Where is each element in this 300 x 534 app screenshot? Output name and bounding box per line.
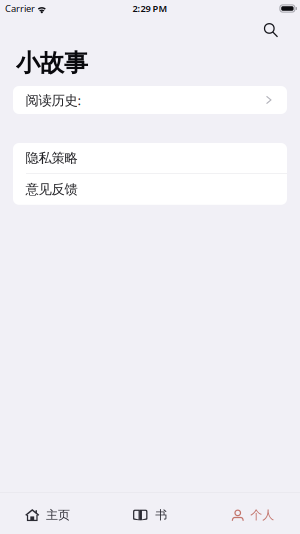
button[interactable]: 意见反馈 — [13, 174, 287, 205]
staticText: 2:29 PM — [132, 2, 167, 15]
staticText: 主页 — [46, 508, 70, 522]
button[interactable]: 主页 — [0, 493, 100, 534]
button[interactable]: 阅读历史: — [13, 86, 287, 114]
staticText: 隐私策略 — [25, 150, 77, 166]
button[interactable]: 书 — [100, 493, 200, 534]
staticText: 阅读历史: — [25, 91, 81, 109]
staticText: Carrier — [5, 2, 35, 15]
button[interactable]: 个人 — [200, 493, 300, 534]
staticText: 书 — [155, 508, 167, 522]
button[interactable]: 隐私策略 — [13, 143, 287, 173]
staticText: 个人 — [250, 508, 274, 522]
button[interactable]: Search — [255, 19, 286, 41]
staticText: 意见反馈 — [25, 181, 77, 197]
staticText: 小故事 — [16, 48, 88, 78]
